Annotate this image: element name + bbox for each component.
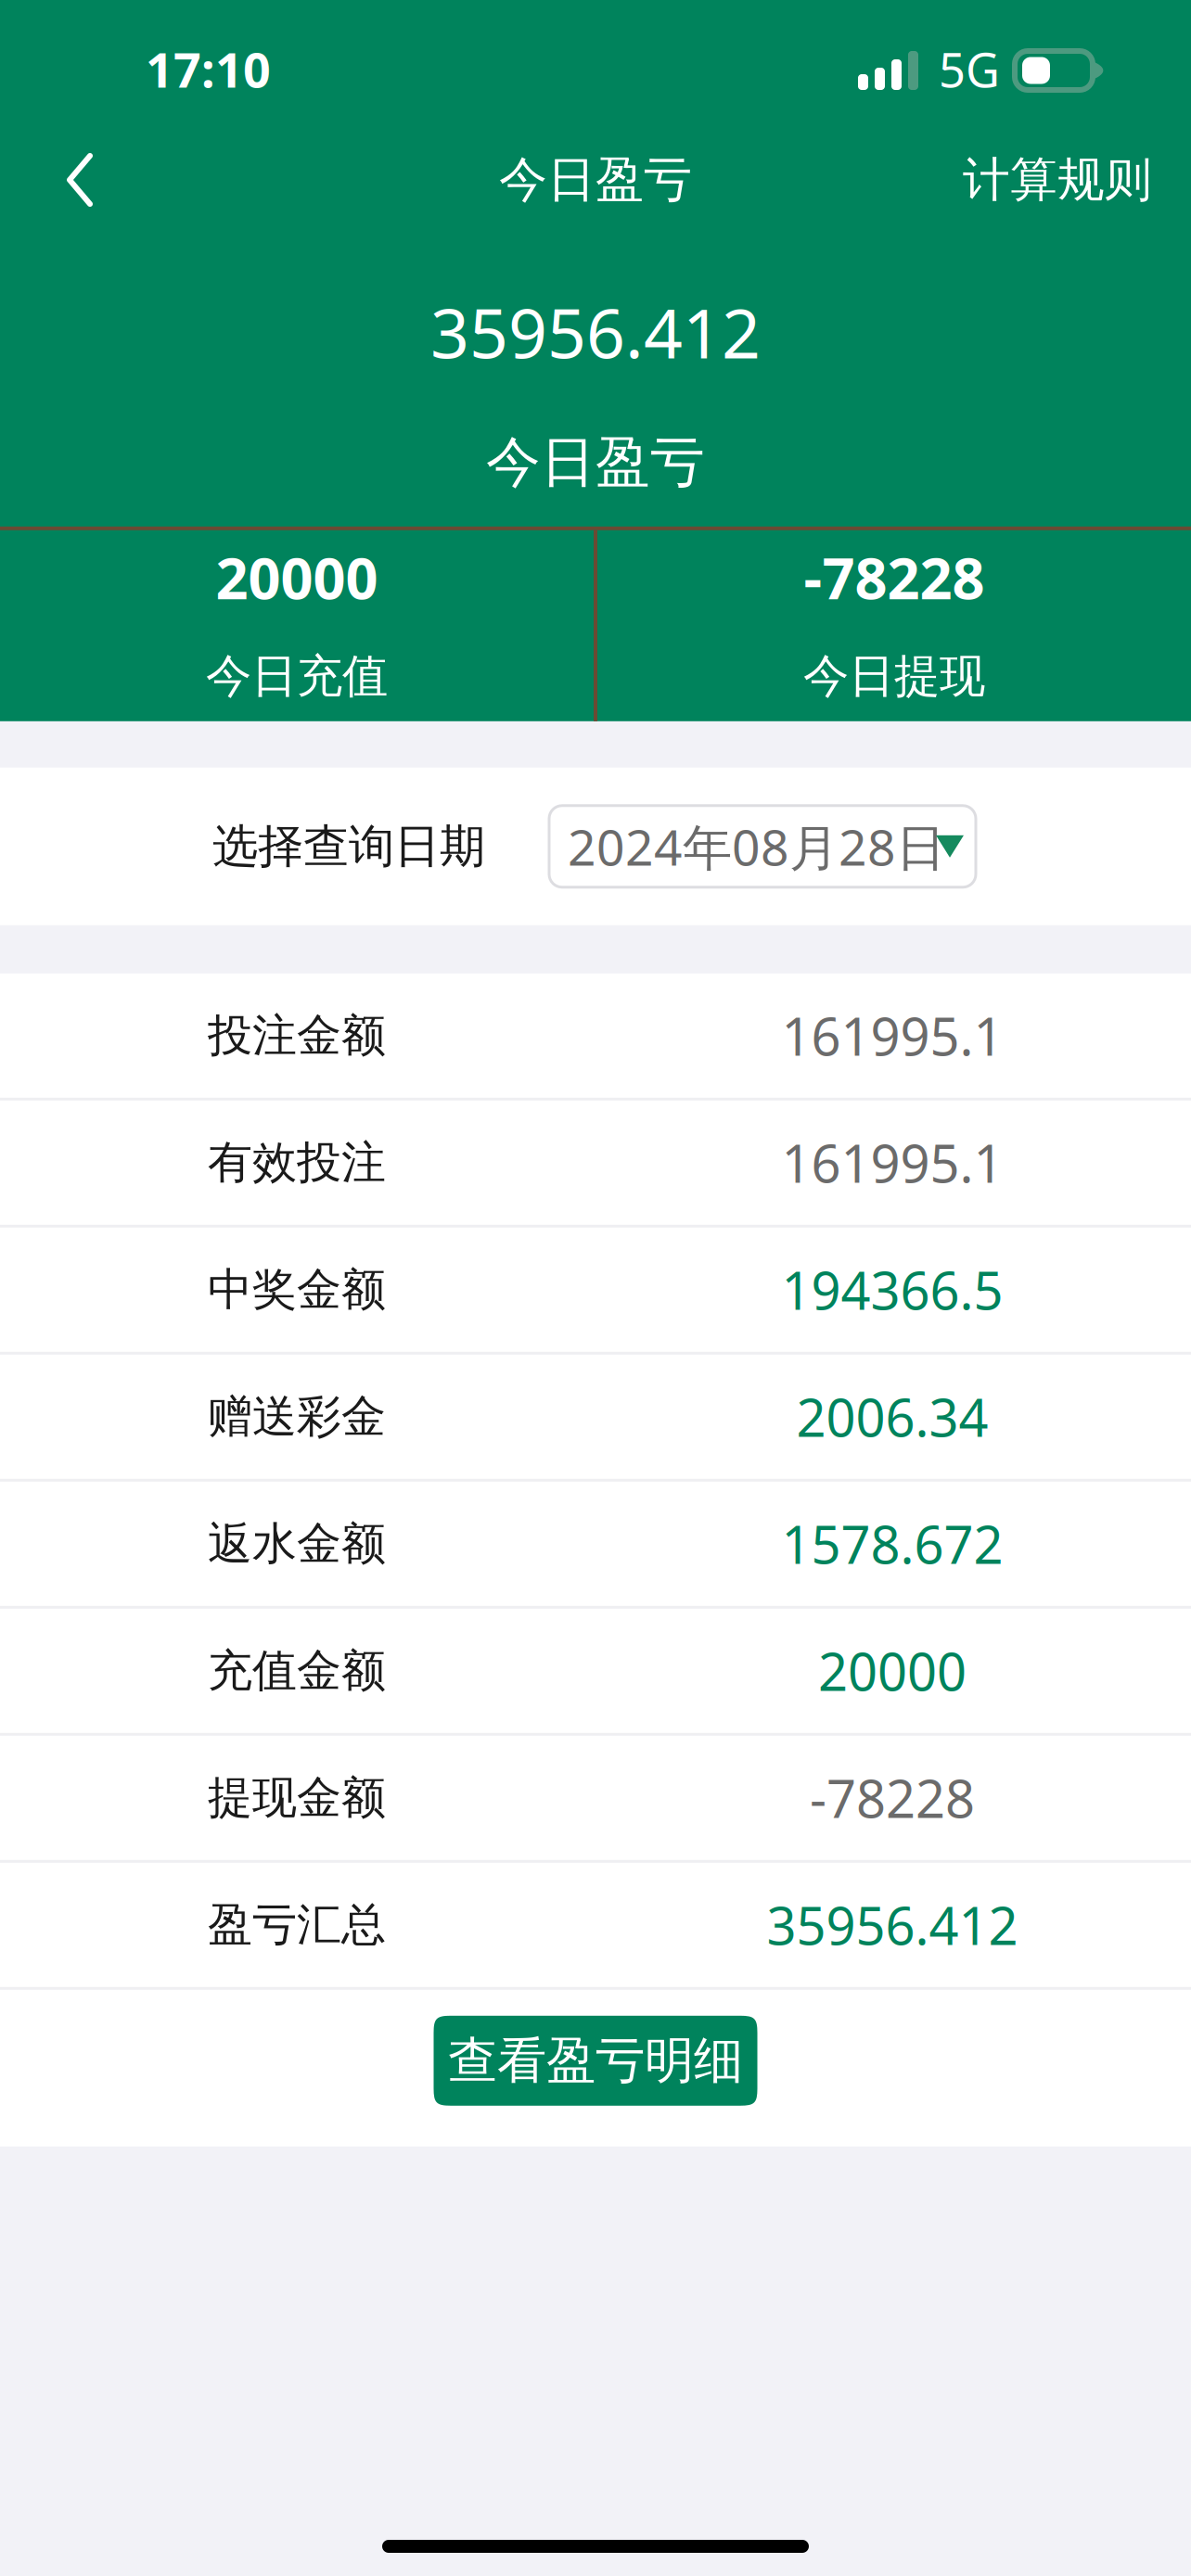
staticText: 查看盈亏明细 xyxy=(448,2030,743,2092)
staticText: 赠送彩金 xyxy=(208,1389,386,1445)
staticText: 有效投注 xyxy=(208,1135,386,1191)
staticText: 返水金额 xyxy=(208,1516,386,1572)
staticText: 今日盈亏 xyxy=(486,428,705,497)
staticText: 1578.672 xyxy=(781,1508,1003,1579)
staticText: 161995.1 xyxy=(781,1000,1003,1071)
staticText: 2006.34 xyxy=(796,1381,988,1452)
staticText: 投注金额 xyxy=(208,1008,386,1064)
staticText: 今日盈亏 xyxy=(499,149,692,210)
staticText: 计算规则 xyxy=(963,150,1152,209)
staticText: 今日充值 xyxy=(206,648,388,705)
staticText: 充值金额 xyxy=(208,1643,386,1699)
staticText: 35956.412 xyxy=(767,1889,1018,1960)
staticText: -78228 xyxy=(810,1762,975,1833)
staticText: 161995.1 xyxy=(781,1127,1003,1198)
button[interactable]: 查看盈亏明细 xyxy=(434,2016,757,2106)
button[interactable]: 计算规则 xyxy=(963,132,1191,228)
staticText: 5G xyxy=(939,37,1000,101)
staticText: 194366.5 xyxy=(781,1254,1003,1325)
staticText: 提现金额 xyxy=(208,1770,386,1826)
staticText: 20000 xyxy=(818,1635,967,1706)
staticText: -78228 xyxy=(804,539,985,616)
staticText: 20000 xyxy=(216,539,378,616)
button[interactable]: 返回 xyxy=(0,132,139,228)
staticText: 选择查询日期 xyxy=(212,818,485,875)
staticText: 35956.412 xyxy=(430,286,761,378)
staticText: 盈亏汇总 xyxy=(208,1897,386,1953)
staticText: 17:10 xyxy=(146,36,271,102)
staticText: 今日提现 xyxy=(803,648,985,705)
staticText: 中奖金额 xyxy=(208,1262,386,1318)
staticText: 2024年08月28日 xyxy=(568,813,945,880)
button[interactable]: 2024年08月28日 xyxy=(549,806,976,887)
